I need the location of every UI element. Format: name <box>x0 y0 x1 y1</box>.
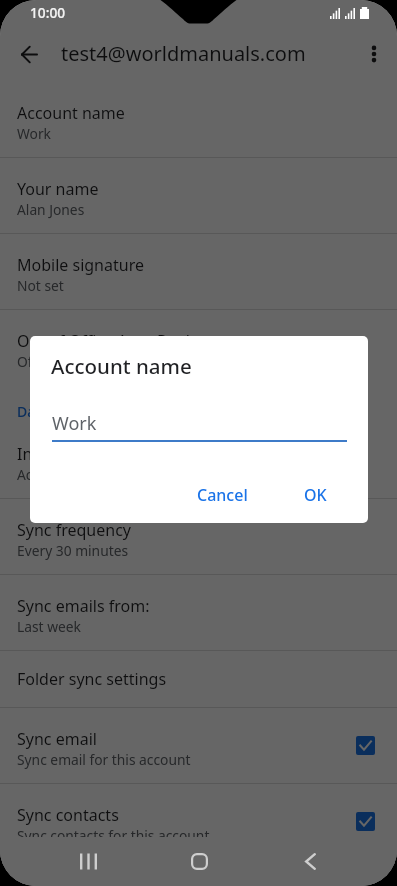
button[interactable]: Back <box>266 837 354 886</box>
staticText: Out of Office Auto Reply <box>17 330 198 352</box>
staticText: Off <box>17 352 38 371</box>
staticText: Account settings <box>17 465 125 484</box>
button[interactable]: Sync emails from: <box>0 575 397 650</box>
button[interactable]: Incoming settings <box>0 423 397 498</box>
staticText: Incoming settings <box>17 443 153 465</box>
staticText: Sync email <box>17 728 97 750</box>
staticText: Every 30 minutes <box>17 541 129 560</box>
staticText: Cancel <box>197 484 248 506</box>
button[interactable]: Recent apps <box>44 837 132 886</box>
button[interactable]: More options <box>352 32 396 76</box>
staticText: Data usage <box>17 402 93 421</box>
button[interactable]: OK <box>292 475 339 515</box>
staticText: Sync contacts for this account <box>17 826 210 845</box>
staticText: test4@worldmanuals.com <box>61 40 306 67</box>
staticText: Work <box>52 411 97 436</box>
button[interactable]: Home <box>155 837 243 886</box>
staticText: Last week <box>17 617 81 636</box>
button[interactable]: Cancel <box>185 475 260 515</box>
button[interactable]: Navigate up <box>7 32 51 76</box>
staticText: Sync email for this account <box>17 750 191 769</box>
staticText: Mobile signature <box>17 254 144 276</box>
staticText: Not set <box>17 276 64 295</box>
button[interactable]: Sync contacts <box>0 784 397 859</box>
button[interactable]: Out of Office Auto Reply <box>0 310 397 385</box>
button[interactable]: Sync email <box>0 708 397 783</box>
staticText: Work <box>17 124 51 143</box>
staticText: Account name <box>51 352 192 380</box>
button[interactable]: Account name <box>0 82 397 157</box>
button[interactable]: Sync frequency <box>0 499 397 574</box>
staticText: Alan Jones <box>17 200 85 219</box>
staticText: OK <box>304 484 327 506</box>
button[interactable]: Your name <box>0 158 397 233</box>
staticText: 10:00 <box>30 3 66 22</box>
button[interactable]: Folder sync settings <box>0 651 397 707</box>
staticText: Sync frequency <box>17 519 131 541</box>
button[interactable]: Mobile signature <box>0 234 397 309</box>
staticText: Sync emails from: <box>17 595 150 617</box>
staticText: Sync contacts <box>17 804 119 826</box>
staticText: Folder sync settings <box>17 668 167 690</box>
staticText: Account name <box>17 102 125 124</box>
staticText: Your name <box>17 178 99 200</box>
